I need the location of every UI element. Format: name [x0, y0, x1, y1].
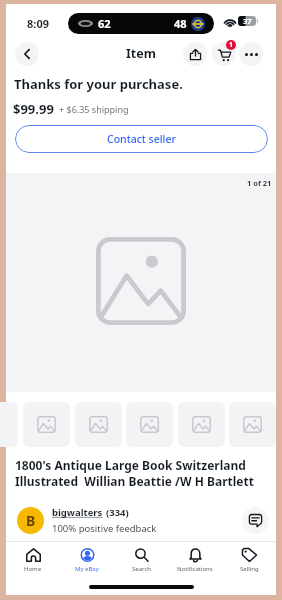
button[interactable]: My eBay	[60, 545, 114, 585]
staticText: Notifications	[177, 565, 213, 573]
staticText: 1	[229, 40, 234, 50]
staticText: 37	[243, 16, 252, 26]
button[interactable]: Message seller	[242, 507, 269, 534]
staticText: My eBay	[75, 565, 99, 573]
button[interactable]: More options	[239, 42, 263, 66]
staticText: Search	[132, 565, 151, 573]
button[interactable]: Photo 2	[75, 402, 122, 447]
staticText: Illustrated Willian Beattie /W H Bartlet…	[15, 473, 254, 489]
staticText: Thanks for your purchase.	[14, 75, 183, 93]
button[interactable]: Notifications	[168, 545, 222, 585]
staticText: Contact seller	[107, 132, 176, 146]
staticText: Item	[126, 45, 156, 62]
staticText: 1 of 21	[247, 178, 272, 188]
staticText: 8:09	[27, 16, 49, 31]
button[interactable]: Photo 5	[229, 402, 276, 447]
button[interactable]: Selling	[222, 545, 276, 585]
button[interactable]: Photo 3	[126, 402, 173, 447]
button[interactable]: Photo 4	[178, 402, 225, 447]
staticText: + $6.35 shipping	[59, 103, 129, 115]
button[interactable]: Shopping cart	[212, 42, 236, 66]
staticText: Home	[24, 565, 42, 573]
staticText: bigwalters	[52, 506, 103, 519]
staticText: B	[26, 511, 36, 530]
button[interactable]: Search	[114, 545, 168, 585]
button[interactable]: Back	[15, 42, 39, 66]
staticText: $99.99	[13, 100, 54, 118]
staticText: Selling	[240, 565, 259, 573]
staticText: 100% positive feedback	[52, 522, 157, 535]
button[interactable]: Contact seller	[15, 125, 268, 153]
button[interactable]: Photo 1	[23, 402, 70, 447]
staticText: 1800's Antique Large Book Switzerland	[15, 457, 246, 473]
button[interactable]: Home	[6, 545, 60, 585]
staticText: 62	[98, 16, 111, 31]
button[interactable]: B	[17, 502, 268, 540]
button[interactable]: Share	[183, 42, 207, 66]
staticText: (334)	[106, 506, 129, 519]
staticText: 48	[174, 16, 187, 31]
